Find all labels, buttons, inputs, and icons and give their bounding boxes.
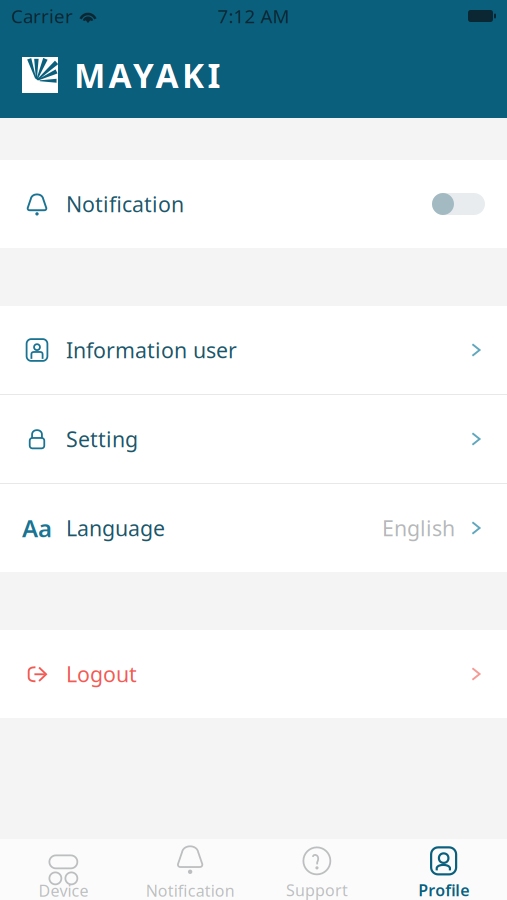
button[interactable]: Logout (0, 630, 507, 718)
staticText: 7:12 AM (217, 4, 289, 28)
button[interactable]: Support (253, 839, 380, 900)
staticText: Carrier (11, 4, 73, 28)
staticText: Support (286, 879, 348, 900)
staticText: Profile (418, 879, 469, 900)
button[interactable]: Device (0, 839, 127, 900)
button[interactable]: Notification (127, 839, 254, 900)
staticText: Notification (146, 880, 235, 900)
button[interactable]: Information user (0, 306, 507, 394)
button[interactable]: Notification (0, 160, 507, 248)
staticText: Information user (66, 336, 237, 364)
staticText: Aa (22, 512, 52, 544)
staticText: Language (66, 514, 165, 542)
staticText: English (382, 514, 455, 542)
staticText: Setting (66, 425, 138, 453)
staticText: Logout (66, 660, 137, 688)
button[interactable]: Aa (0, 484, 507, 572)
staticText: MAYAKI (74, 53, 220, 97)
staticText: Notification (66, 190, 184, 218)
button[interactable]: Profile (380, 839, 507, 900)
button[interactable]: Setting (0, 395, 507, 483)
staticText: Device (38, 880, 88, 900)
